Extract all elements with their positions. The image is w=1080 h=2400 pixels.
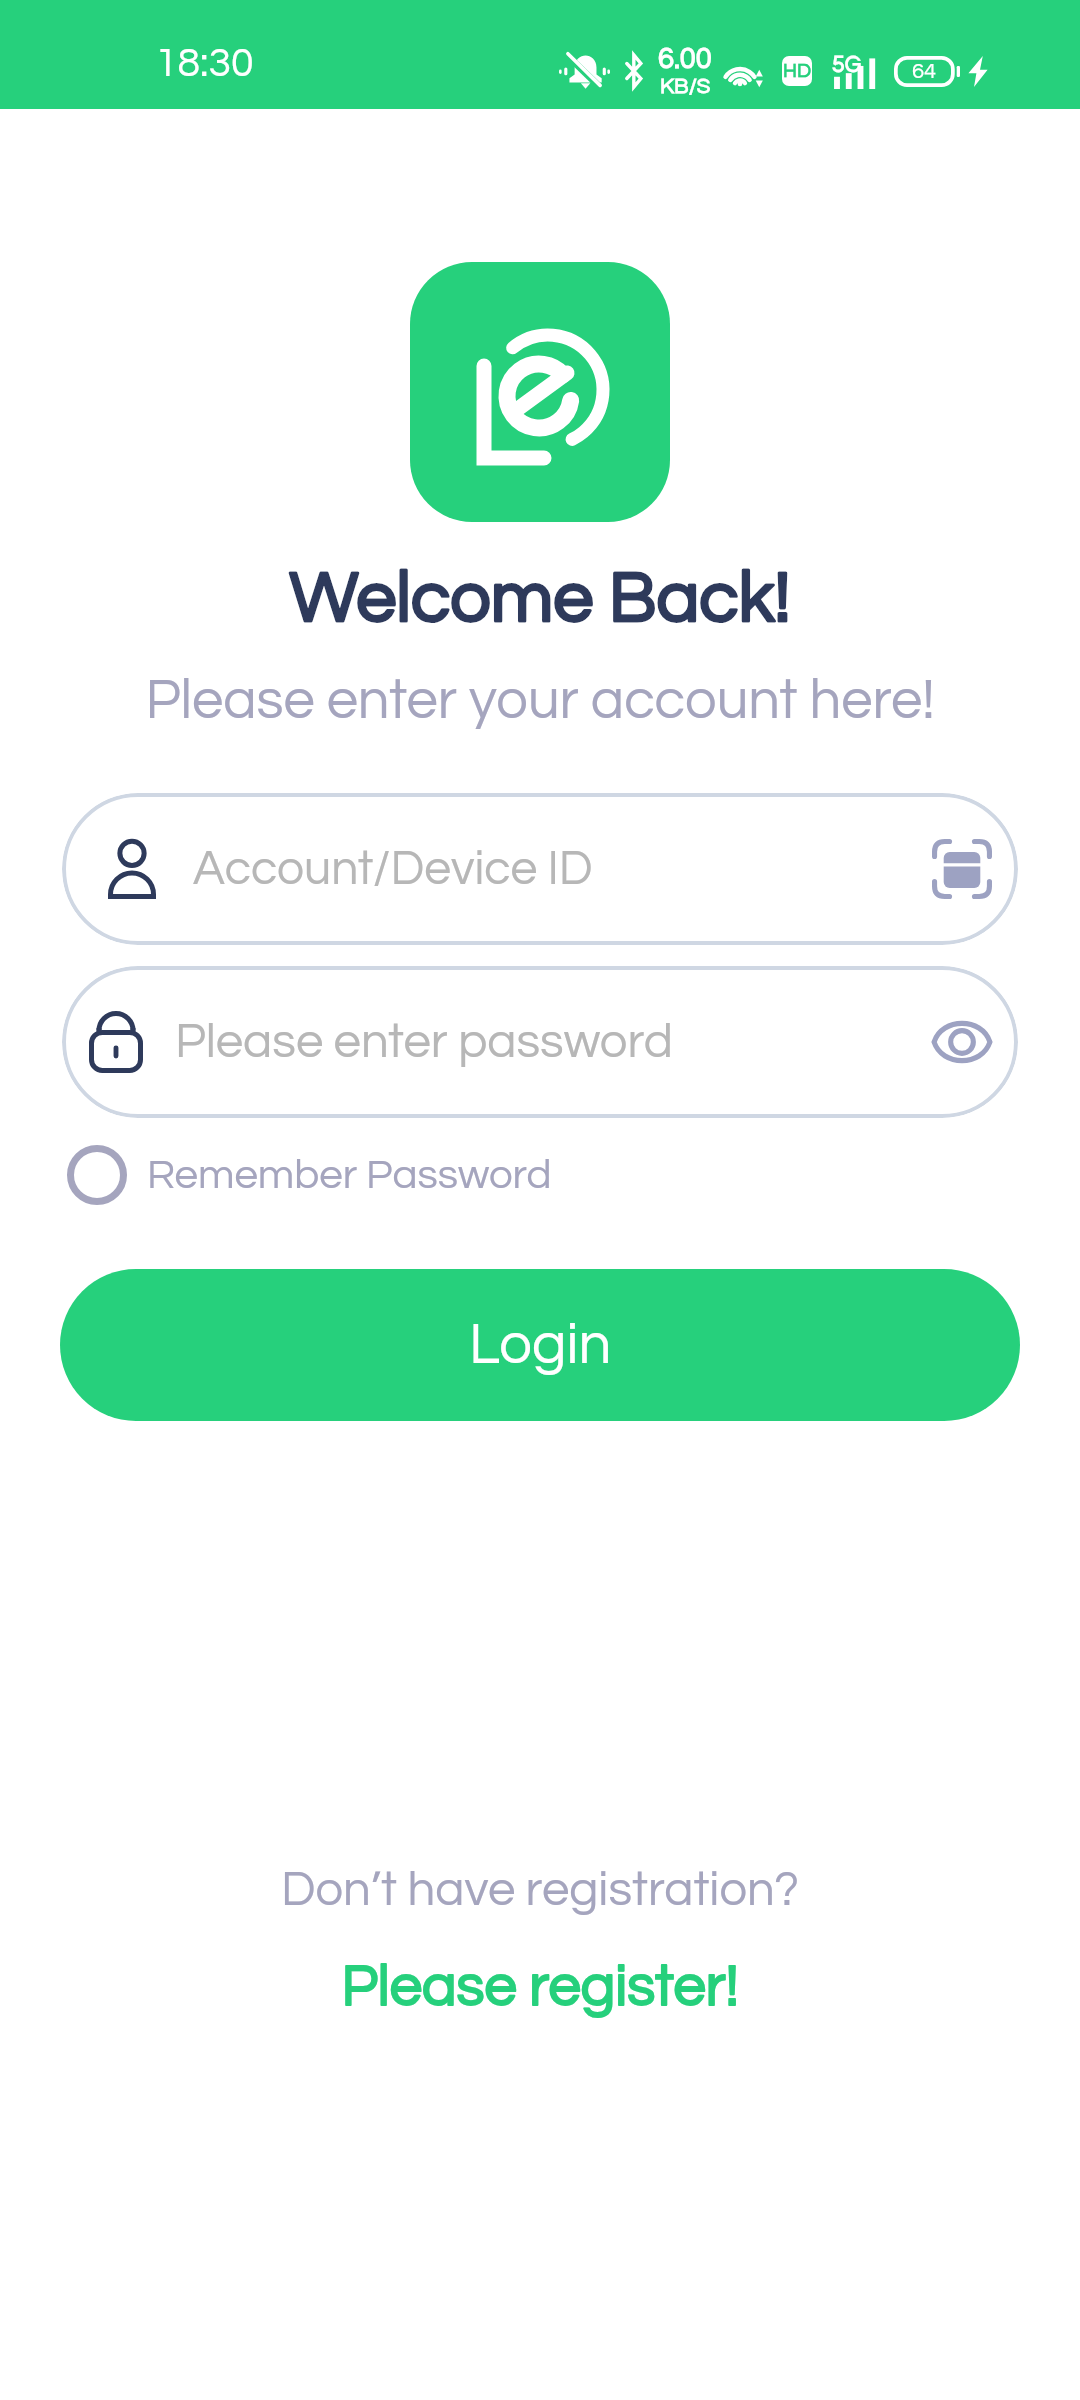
- staticText: Account/Device ID: [193, 845, 917, 894]
- staticText: 18:30: [155, 42, 254, 84]
- staticText: 6.00: [658, 44, 712, 74]
- button[interactable]: Scan QR code: [917, 814, 1007, 924]
- button[interactable]: Please enter password: [62, 966, 1018, 1118]
- staticText: 5G: [832, 53, 862, 77]
- staticText: HD: [783, 61, 811, 82]
- staticText: Please register!: [14, 1957, 1066, 2017]
- button[interactable]: Login: [60, 1269, 1020, 1421]
- button[interactable]: Account/Device ID: [62, 793, 1018, 945]
- staticText: Welcome Back!: [0, 562, 1080, 636]
- staticText: Remember Password: [147, 1154, 552, 1197]
- staticText: Login: [469, 1315, 612, 1375]
- staticText: Please enter password: [175, 1017, 916, 1067]
- staticText: Welcome Back!: [0, 562, 1080, 636]
- button[interactable]: Show password: [916, 987, 1008, 1097]
- staticText: Please register!: [14, 1957, 1066, 2017]
- button[interactable]: Remember Password: [66, 1138, 552, 1212]
- staticText: 64: [912, 60, 937, 83]
- button[interactable]: Please register!: [0, 1951, 1080, 2023]
- staticText: Please enter your account here!: [0, 672, 1080, 730]
- staticText: KB/S: [660, 75, 711, 98]
- staticText: Don’t have registration?: [0, 1865, 1080, 1915]
